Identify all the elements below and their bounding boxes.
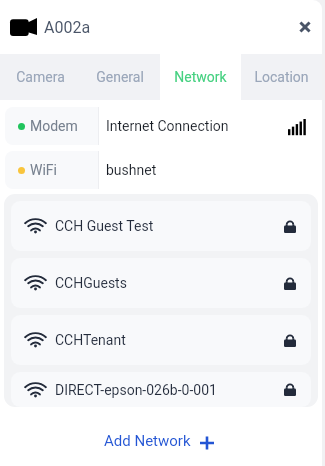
- button[interactable]: Close: [292, 14, 318, 40]
- button[interactable]: Location: [241, 54, 322, 100]
- button[interactable]: CCHGuests: [11, 258, 311, 308]
- staticText: A002a: [44, 18, 91, 37]
- staticText: Internet Connection: [106, 118, 229, 134]
- staticText: General: [96, 69, 144, 85]
- button[interactable]: WiFi: [5, 151, 315, 189]
- staticText: Network: [174, 69, 227, 85]
- staticText: Add Network: [104, 432, 191, 450]
- staticText: CCHTenant: [55, 332, 126, 348]
- staticText: Modem: [30, 118, 78, 134]
- staticText: Location: [254, 69, 309, 85]
- staticText: DIRECT-epson-026b-0-001: [55, 382, 217, 398]
- button[interactable]: Modem: [5, 107, 315, 145]
- button[interactable]: DIRECT-epson-026b-0-001: [11, 372, 311, 407]
- button[interactable]: General: [80, 54, 160, 100]
- button[interactable]: CCH Guest Test: [11, 201, 311, 251]
- button[interactable]: CCHTenant: [11, 315, 311, 365]
- staticText: CCH Guest Test: [55, 218, 154, 234]
- button[interactable]: Camera: [0, 54, 80, 100]
- staticText: CCHGuests: [55, 275, 127, 291]
- staticText: bushnet: [106, 162, 157, 178]
- button[interactable]: Add Network: [104, 428, 214, 454]
- staticText: WiFi: [30, 162, 57, 178]
- button[interactable]: Network: [160, 54, 241, 100]
- staticText: Camera: [16, 69, 65, 85]
